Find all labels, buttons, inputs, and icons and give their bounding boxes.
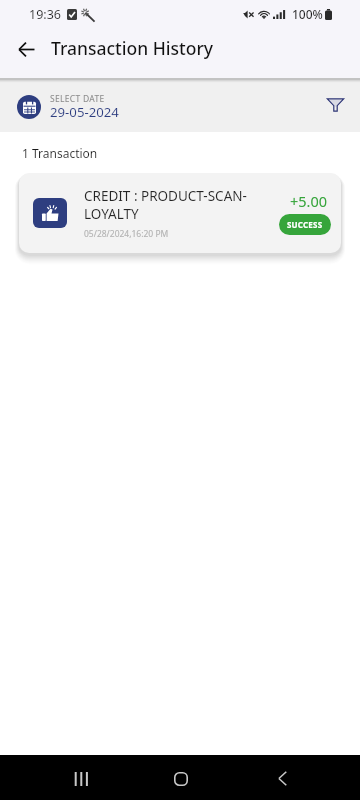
staticText: +5.00	[290, 191, 328, 211]
staticText: 100%	[292, 6, 323, 22]
staticText: SUCCESS	[287, 219, 323, 230]
button[interactable]: Back	[8, 31, 44, 67]
staticText: CREDIT : PRODUCT-SCAN-LOYALTY	[84, 187, 268, 223]
staticText: SELECT DATE	[50, 93, 105, 105]
button[interactable]: Back	[258, 756, 306, 800]
button[interactable]: Home	[157, 756, 205, 800]
staticText: 1 Transaction	[22, 145, 98, 161]
button[interactable]: Recents	[57, 756, 105, 800]
staticText: Transaction History	[51, 36, 214, 60]
button[interactable]: Filter	[320, 90, 350, 120]
staticText: 19:36	[29, 6, 61, 23]
button[interactable]: CREDIT : PRODUCT-SCAN-LOYALTY	[19, 173, 341, 253]
button[interactable]: SELECT DATE	[17, 90, 119, 123]
staticText: 29-05-2024	[50, 103, 119, 121]
staticText: 05/28/2024,16:20 PM	[84, 228, 169, 240]
